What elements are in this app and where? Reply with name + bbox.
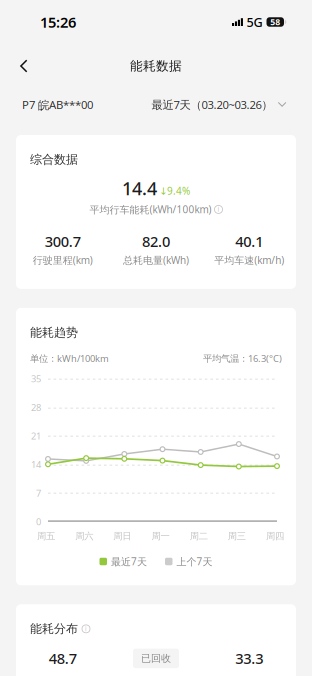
staticText: 综合数据	[30, 152, 78, 167]
staticText: 平均车速(km/h)	[214, 253, 284, 267]
staticText: 82.0	[142, 231, 170, 251]
staticText: 15:26	[40, 12, 76, 32]
staticText: 58	[270, 16, 280, 28]
staticText: 行驶里程(km)	[33, 253, 93, 267]
staticText: 能耗趋势	[30, 325, 78, 340]
staticText: 48.7	[49, 648, 77, 668]
staticText: 已回收	[141, 652, 171, 665]
staticText: 33.3	[235, 648, 263, 668]
button[interactable]: P7 皖AB***00	[22, 91, 93, 118]
staticText: 0	[36, 515, 41, 528]
staticText: 周一	[151, 530, 169, 542]
staticText: 5G	[246, 13, 262, 31]
staticText: 上个7天	[176, 555, 212, 568]
staticText: 周四	[266, 530, 284, 542]
staticText: 300.7	[45, 231, 81, 251]
staticText: 周日	[113, 530, 131, 542]
staticText: 能耗数据	[130, 58, 182, 74]
staticText: 28	[31, 401, 41, 414]
staticText: 21	[31, 429, 41, 442]
staticText: 最近7天	[111, 555, 147, 568]
button[interactable]: Back	[7, 51, 41, 81]
staticText: 周六	[75, 530, 93, 542]
staticText: 周五	[37, 530, 55, 542]
staticText: 14.4	[122, 176, 157, 201]
button[interactable]: 最近7天（03.20~03.26）	[151, 91, 287, 118]
staticText: 总耗电量(kWh)	[123, 253, 189, 267]
staticText: 单位：kWh/100km	[30, 352, 109, 365]
staticText: i	[85, 625, 87, 633]
staticText: 40.1	[235, 231, 263, 251]
staticText: 周三	[228, 530, 246, 542]
staticText: 平均气温：16.3(°C)	[203, 352, 282, 365]
staticText: 平均行车能耗(kWh/100km)	[89, 203, 211, 216]
staticText: 14	[31, 458, 41, 471]
staticText: 35	[31, 372, 41, 385]
staticText: P7 皖AB***00	[22, 97, 93, 112]
staticText: i	[217, 205, 219, 214]
staticText: 最近7天（03.20~03.26）	[151, 97, 272, 112]
staticText: 能耗分布	[30, 621, 78, 636]
staticText: 7	[36, 487, 41, 499]
staticText: ↓9.4%	[159, 184, 190, 198]
staticText: 周二	[190, 530, 208, 542]
